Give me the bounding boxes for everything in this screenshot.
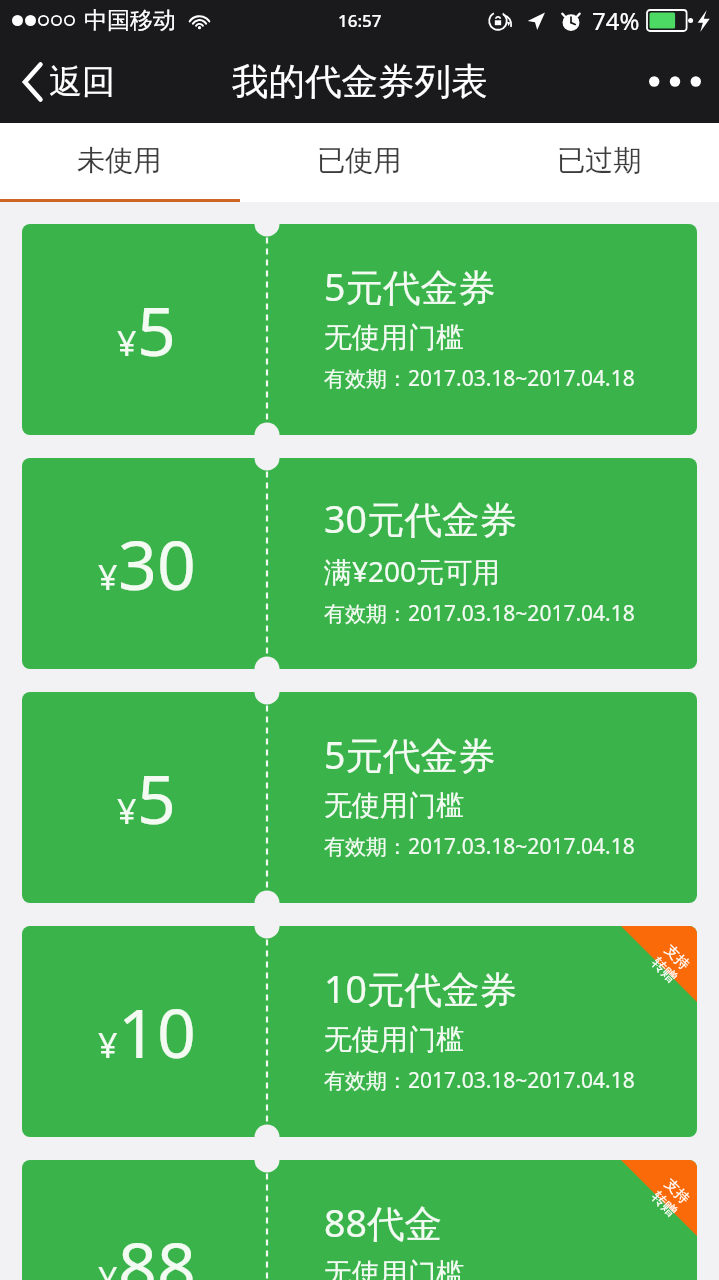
button[interactable]: 返回 <box>0 51 133 113</box>
staticText: 已过期 <box>557 143 642 179</box>
staticText: ¥ <box>117 320 137 366</box>
staticText: ¥ <box>98 554 118 600</box>
staticText: 未使用 <box>77 143 162 179</box>
staticText: 支持 <box>660 1175 693 1208</box>
staticText: 10元代金券 <box>324 963 517 1014</box>
button[interactable]: 支持 <box>22 926 697 1137</box>
staticText: 支持 <box>660 941 693 974</box>
staticText: 满¥200元可用 <box>324 552 501 590</box>
staticText: 有效期：2017.03.18~2017.04.18 <box>324 1066 635 1095</box>
button[interactable]: 未使用 <box>0 123 239 199</box>
button[interactable]: 已过期 <box>479 123 719 199</box>
staticText: 5元代金券 <box>324 261 496 312</box>
button[interactable]: ¥ <box>22 224 697 435</box>
staticText: ¥ <box>98 1256 118 1280</box>
staticText: 无使用门槛 <box>324 1256 464 1280</box>
staticText: 无使用门槛 <box>324 1022 464 1057</box>
staticText: 30元代金券 <box>324 493 517 544</box>
staticText: 转赠 <box>648 954 680 987</box>
staticText: 中国移动 <box>84 6 176 35</box>
button[interactable]: More options <box>631 56 719 107</box>
staticText: 5 <box>137 751 176 844</box>
staticText: 5元代金券 <box>324 729 496 780</box>
staticText: 5 <box>137 283 176 376</box>
staticText: 88代金 <box>324 1197 442 1248</box>
staticText: 我的代金券列表 <box>232 59 488 105</box>
staticText: ¥ <box>98 1022 118 1068</box>
staticText: 74% <box>592 4 640 37</box>
staticText: 88 <box>118 1219 196 1280</box>
staticText: 有效期：2017.03.18~2017.04.18 <box>324 364 635 393</box>
button[interactable]: 支持 <box>22 1160 697 1280</box>
staticText: 无使用门槛 <box>324 788 464 823</box>
staticText: 有效期：2017.03.18~2017.04.18 <box>324 599 635 628</box>
staticText: 转赠 <box>648 1188 680 1221</box>
staticText: 有效期：2017.03.18~2017.04.18 <box>324 832 635 861</box>
staticText: 30 <box>118 517 196 610</box>
staticText: 返回 <box>49 61 115 103</box>
button[interactable]: ¥ <box>22 692 697 903</box>
staticText: 16:57 <box>338 9 382 32</box>
staticText: ¥ <box>117 788 137 834</box>
staticText: 无使用门槛 <box>324 320 464 355</box>
button[interactable]: 已使用 <box>239 123 479 199</box>
staticText: 已使用 <box>317 143 402 179</box>
staticText: 10 <box>118 985 196 1078</box>
button[interactable]: ¥ <box>22 458 697 669</box>
